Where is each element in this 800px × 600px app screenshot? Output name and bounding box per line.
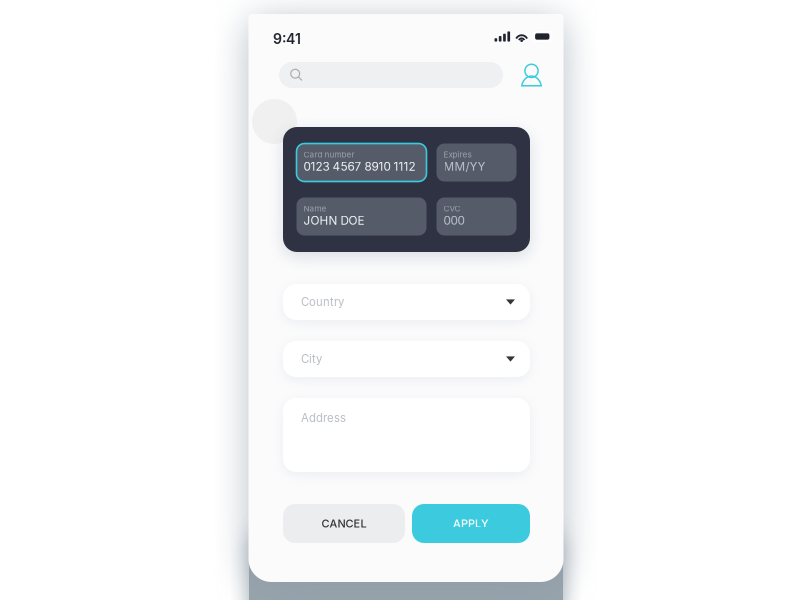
staticText: City bbox=[301, 352, 322, 366]
button[interactable]: CVC bbox=[436, 197, 516, 235]
button[interactable]: City bbox=[283, 341, 530, 377]
staticText: APPLY bbox=[453, 517, 489, 530]
button[interactable]: APPLY bbox=[412, 504, 530, 543]
button[interactable]: Card number bbox=[296, 143, 426, 181]
staticText: 000 bbox=[443, 213, 464, 228]
staticText: Expires bbox=[443, 150, 471, 159]
staticText: 9:41 bbox=[273, 30, 301, 47]
button[interactable]: Name bbox=[296, 197, 426, 235]
button[interactable]: Account bbox=[513, 58, 550, 92]
staticText: CANCEL bbox=[321, 517, 366, 530]
staticText: JOHN DOE bbox=[303, 213, 364, 228]
staticText: Address bbox=[301, 411, 346, 425]
staticText: Name bbox=[303, 204, 326, 213]
staticText: CVC bbox=[443, 204, 460, 213]
button[interactable]: Expires bbox=[436, 143, 516, 181]
staticText: Card number bbox=[303, 150, 354, 159]
staticText: 0123 4567 8910 1112 bbox=[303, 159, 415, 174]
staticText: MM/YY bbox=[443, 159, 485, 174]
staticText: Country bbox=[301, 295, 344, 309]
button[interactable]: CANCEL bbox=[283, 504, 405, 543]
button[interactable]: Country bbox=[283, 284, 530, 320]
